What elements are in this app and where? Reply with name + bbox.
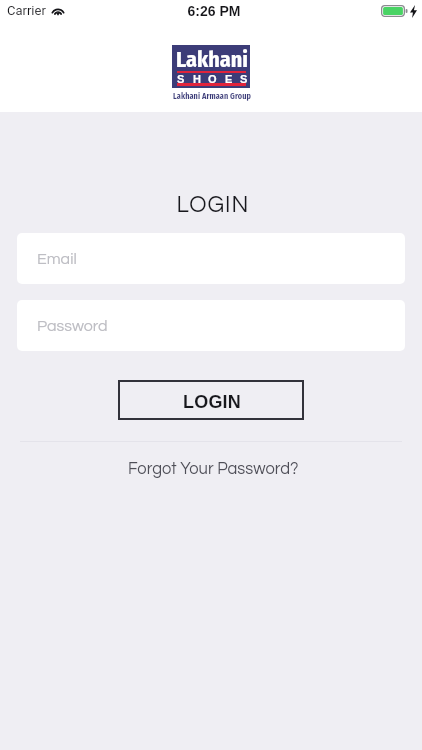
staticText: S	[177, 73, 185, 85]
button[interactable]: Password	[17, 300, 405, 351]
staticText: E	[225, 73, 233, 85]
staticText: Carrier	[7, 3, 46, 18]
staticText: O	[208, 73, 217, 85]
staticText: H	[193, 73, 201, 85]
other: Wi-Fi signal	[51, 5, 65, 16]
staticText: Lakhani	[176, 46, 248, 72]
staticText: S	[240, 73, 248, 85]
staticText: LOGIN	[2, 193, 422, 217]
staticText: Password	[37, 318, 108, 334]
staticText: LOGIN	[183, 392, 241, 412]
button[interactable]: Forgot Your Password?	[0, 456, 422, 480]
button[interactable]: Email	[17, 233, 405, 284]
staticText: Forgot Your Password?	[128, 460, 299, 477]
staticText: 6:26 PM	[3, 3, 422, 19]
button[interactable]: LOGIN	[118, 380, 304, 420]
staticText: Lakhani Armaan Group	[1, 91, 422, 101]
other: Battery charging	[381, 5, 418, 18]
staticText: Email	[37, 251, 77, 267]
